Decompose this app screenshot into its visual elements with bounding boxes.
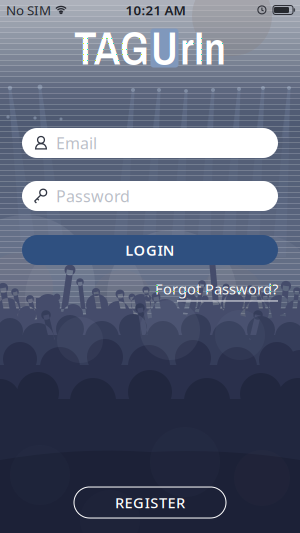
staticText: Password	[56, 185, 130, 207]
button[interactable]: Forgot Password?	[155, 279, 278, 301]
staticText: U	[151, 17, 178, 79]
staticText: No SIM	[6, 1, 51, 19]
staticText: 10:21 AM	[125, 1, 185, 19]
button[interactable]: LOGIN	[22, 235, 278, 265]
staticText: LOGIN	[125, 240, 175, 260]
staticText: REGISTER	[115, 493, 185, 512]
staticText: Email	[56, 132, 97, 154]
button[interactable]: REGISTER	[74, 487, 226, 518]
staticText: rIn	[180, 17, 226, 79]
button[interactable]: Password	[22, 181, 278, 211]
staticText: TAG	[74, 17, 149, 79]
staticText: Forgot Password?	[155, 279, 278, 298]
button[interactable]: Email	[22, 128, 278, 158]
